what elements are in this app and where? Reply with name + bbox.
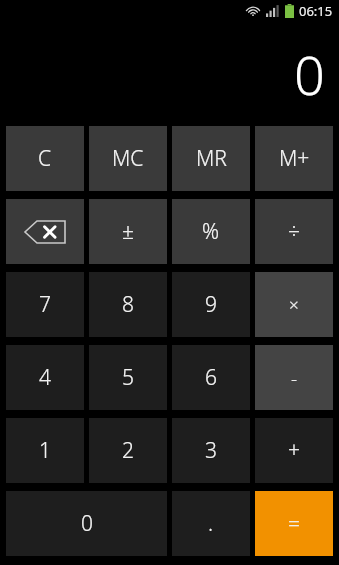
button[interactable]: 6 <box>172 345 250 410</box>
staticText: 6 <box>205 363 217 392</box>
staticText: . <box>208 509 214 538</box>
staticText: 8 <box>122 290 134 319</box>
button[interactable]: M+ <box>255 126 333 191</box>
button[interactable]: 4 <box>6 345 84 410</box>
button[interactable]: 8 <box>89 272 167 337</box>
staticText: ÷ <box>288 217 300 246</box>
button[interactable]: = <box>255 491 333 556</box>
staticText: 7 <box>39 290 51 319</box>
staticText: 3 <box>205 436 217 465</box>
button[interactable]: Backspace <box>6 199 84 264</box>
button[interactable]: . <box>172 491 250 556</box>
staticText: ± <box>122 217 134 246</box>
button[interactable]: 7 <box>6 272 84 337</box>
button[interactable]: 3 <box>172 418 250 483</box>
button[interactable]: ± <box>89 199 167 264</box>
staticText: MR <box>196 144 227 173</box>
button[interactable]: ÷ <box>255 199 333 264</box>
button[interactable]: - <box>255 345 333 410</box>
staticText: + <box>288 436 300 465</box>
button[interactable]: 9 <box>172 272 250 337</box>
staticText: M+ <box>279 144 310 173</box>
staticText: MC <box>112 144 144 173</box>
staticText: 06:15 <box>299 2 333 20</box>
button[interactable]: 2 <box>89 418 167 483</box>
button[interactable]: 1 <box>6 418 84 483</box>
staticText: 0 <box>294 37 325 111</box>
staticText: 9 <box>205 290 217 319</box>
staticText: = <box>288 509 300 538</box>
staticText: 4 <box>39 363 51 392</box>
button[interactable]: 5 <box>89 345 167 410</box>
staticText: × <box>289 293 299 316</box>
staticText: 0 <box>81 509 93 538</box>
staticText: 5 <box>122 363 134 392</box>
staticText: % <box>202 217 220 246</box>
button[interactable]: % <box>172 199 250 264</box>
button[interactable]: + <box>255 418 333 483</box>
staticText: 2 <box>122 436 134 465</box>
button[interactable]: C <box>6 126 84 191</box>
button[interactable]: MR <box>172 126 250 191</box>
staticText: C <box>38 144 52 173</box>
button[interactable]: 0 <box>6 491 167 556</box>
button[interactable]: MC <box>89 126 167 191</box>
staticText: 1 <box>39 436 51 465</box>
staticText: - <box>291 365 298 391</box>
button[interactable]: × <box>255 272 333 337</box>
